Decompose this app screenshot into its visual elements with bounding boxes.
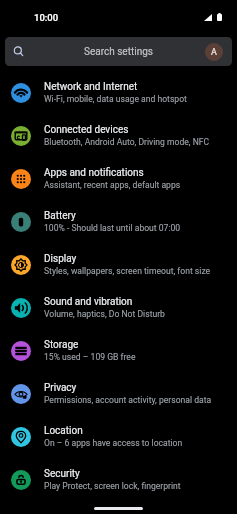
staticText: Privacy (44, 382, 77, 394)
button[interactable]: Display (0, 243, 237, 286)
staticText: Search settings (84, 46, 153, 58)
button[interactable]: Battery (0, 200, 237, 243)
staticText: 10:00 (34, 12, 59, 23)
button[interactable]: Apps and notifications (0, 157, 237, 200)
staticText: Location (44, 425, 83, 437)
staticText: Assistant, recent apps, default apps (44, 180, 181, 190)
button[interactable]: Sound and vibration (0, 286, 237, 329)
staticText: Display (44, 253, 77, 265)
staticText: Wi-Fi, mobile, data usage and hotspot (44, 94, 187, 104)
staticText: Connected devices (44, 124, 129, 136)
staticText: Styles, wallpapers, screen timeout, font… (44, 266, 211, 276)
staticText: Apps and notifications (44, 167, 144, 179)
staticText: Network and Internet (44, 81, 138, 93)
staticText: Bluetooth, Android Auto, Driving mode, N… (44, 137, 210, 147)
staticText: Storage (44, 339, 79, 351)
button[interactable]: Security (0, 458, 237, 501)
staticText: Play Protect, screen lock, fingerprint (44, 481, 181, 491)
button[interactable]: Connected devices (0, 114, 237, 157)
staticText: A (211, 47, 217, 58)
staticText: Security (44, 468, 80, 480)
staticText: On – 6 apps have access to location (44, 438, 183, 448)
button[interactable]: Network and Internet (0, 71, 237, 114)
button[interactable]: Location (0, 415, 237, 458)
button[interactable]: Search settings (5, 37, 232, 66)
staticText: 15% used – 109 GB free (44, 352, 136, 362)
button[interactable]: Account (205, 43, 223, 61)
button[interactable]: Privacy (0, 372, 237, 415)
staticText: Permissions, account activity, personal … (44, 395, 212, 405)
other: Search (13, 46, 24, 57)
staticText: Battery (44, 210, 76, 222)
staticText: Sound and vibration (44, 296, 133, 308)
button[interactable]: Storage (0, 329, 237, 372)
staticText: Volume, haptics, Do Not Disturb (44, 309, 165, 319)
staticText: 100% - Should last until about 07:00 (44, 223, 181, 233)
